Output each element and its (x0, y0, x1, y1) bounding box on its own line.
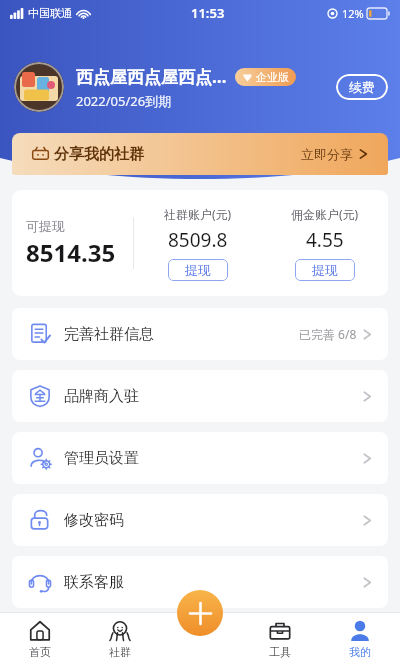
staticText: 8509.8 (168, 227, 228, 253)
staticText: 企业版 (256, 70, 289, 84)
staticText: 11:53 (191, 4, 225, 22)
staticText: 提现 (185, 262, 211, 278)
staticText: 工具 (269, 645, 291, 659)
button[interactable]: Avatar (14, 62, 64, 112)
button[interactable]: 提现 (168, 259, 228, 281)
button[interactable]: 品牌商入驻 (12, 370, 388, 422)
staticText: 立即分享 (301, 146, 353, 162)
button[interactable]: 企业版 (235, 68, 296, 86)
staticText: 12% (342, 6, 364, 21)
button[interactable]: 分享我的社群 (12, 133, 388, 175)
staticText: 社群 (109, 645, 131, 659)
staticText: 联系客服 (64, 573, 124, 592)
staticText: 8514.35 (26, 236, 116, 269)
staticText: 分享我的社群 (54, 145, 144, 164)
button[interactable]: 完善社群信息 (12, 308, 388, 360)
button[interactable]: 提现 (295, 259, 355, 281)
button[interactable]: 管理员设置 (12, 432, 388, 484)
staticText: 品牌商入驻 (64, 387, 139, 406)
staticText: 提现 (312, 262, 338, 278)
button[interactable]: 联系客服 (12, 556, 388, 608)
button[interactable]: 我的 (320, 612, 400, 666)
staticText: 4.55 (306, 227, 344, 253)
staticText: 完善社群信息 (64, 325, 154, 344)
button[interactable]: 社群 (80, 612, 160, 666)
staticText: 西点屋西点屋西点… (76, 65, 227, 88)
staticText: 可提现 (26, 218, 65, 234)
button[interactable]: 续费 (336, 74, 388, 100)
staticText: 我的 (349, 645, 371, 659)
staticText: 管理员设置 (64, 449, 139, 468)
staticText: 中国联通 (28, 6, 72, 20)
button[interactable]: 工具 (240, 612, 320, 666)
staticText: 已完善 6/8 (299, 326, 357, 342)
staticText: 续费 (349, 79, 375, 95)
button[interactable]: Add (177, 590, 223, 636)
staticText: 首页 (29, 645, 51, 659)
button[interactable]: 首页 (0, 612, 80, 666)
staticText: 2022/05/26到期 (76, 92, 172, 110)
staticText: 社群账户(元) (164, 206, 232, 222)
button[interactable]: 修改密码 (12, 494, 388, 546)
staticText: 佣金账户(元) (291, 206, 359, 222)
staticText: 修改密码 (64, 511, 124, 530)
